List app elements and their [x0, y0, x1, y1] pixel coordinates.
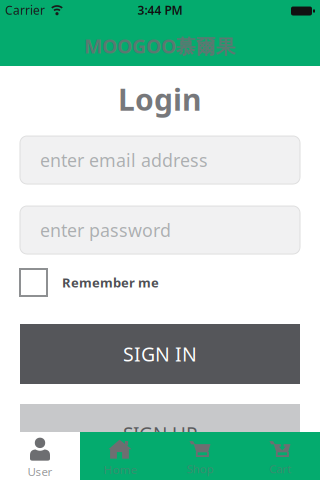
button[interactable]: enter email address: [20, 136, 300, 184]
button[interactable]: Cart: [240, 432, 320, 480]
staticText: User: [27, 464, 52, 479]
staticText: Home: [103, 462, 136, 477]
staticText: SIGN UP: [123, 421, 197, 447]
button[interactable]: User: [0, 432, 80, 480]
button[interactable]: Home: [80, 432, 160, 480]
button[interactable]: SIGN IN: [20, 324, 300, 384]
staticText: Cart: [269, 461, 291, 477]
staticText: enter email address: [40, 148, 208, 172]
staticText: MOOGOO慕爾果: [84, 33, 236, 59]
staticText: Remember me: [62, 274, 159, 291]
button[interactable]: Shop: [160, 432, 240, 480]
staticText: SIGN IN: [123, 341, 197, 367]
button[interactable]: [20, 269, 47, 296]
staticText: enter password: [40, 218, 171, 242]
staticText: Shop: [186, 461, 213, 477]
staticText: Carrier: [5, 2, 45, 18]
button[interactable]: SIGN UP: [20, 404, 300, 464]
staticText: 3:44 PM: [137, 2, 182, 18]
button[interactable]: enter password: [20, 206, 300, 254]
staticText: Login: [118, 79, 202, 119]
